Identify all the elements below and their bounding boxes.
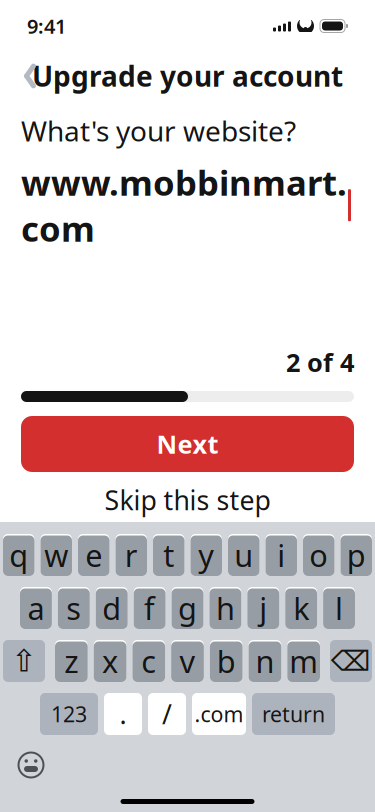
staticText: Next: [156, 427, 218, 461]
staticText: h: [216, 588, 235, 628]
button[interactable]: d: [96, 587, 128, 629]
staticText: m: [289, 641, 318, 681]
staticText: Upgrade your account: [32, 57, 343, 95]
staticText: x: [102, 641, 118, 681]
button[interactable]: Emoji keyboard: [9, 743, 53, 787]
staticText: u: [234, 535, 253, 575]
staticText: b: [217, 641, 236, 681]
staticText: www.mobbinmart.com: [21, 159, 347, 251]
button[interactable]: e: [78, 534, 109, 576]
staticText: l: [335, 588, 343, 628]
button[interactable]: .com: [192, 693, 246, 735]
button[interactable]: g: [172, 587, 203, 629]
button[interactable]: m: [287, 640, 320, 682]
button[interactable]: t: [153, 534, 184, 576]
button[interactable]: w: [40, 534, 72, 576]
button[interactable]: a: [20, 587, 52, 629]
button[interactable]: x: [94, 640, 126, 682]
staticText: y: [198, 535, 214, 575]
staticText: i: [277, 535, 285, 575]
staticText: .com: [194, 700, 243, 728]
staticText: c: [141, 641, 156, 681]
button[interactable]: l: [323, 587, 355, 629]
button[interactable]: Back: [8, 54, 52, 98]
staticText: j: [259, 588, 267, 628]
button[interactable]: .: [104, 693, 142, 735]
staticText: s: [66, 588, 81, 628]
staticText: ⇧: [11, 644, 37, 678]
button[interactable]: v: [171, 640, 204, 682]
staticText: p: [347, 535, 366, 575]
button[interactable]: return: [252, 693, 335, 735]
button[interactable]: j: [247, 587, 279, 629]
staticText: z: [64, 641, 78, 681]
button[interactable]: z: [55, 640, 88, 682]
staticText: Skip this step: [104, 482, 270, 518]
button[interactable]: /: [148, 693, 186, 735]
button[interactable]: Skip this step: [21, 478, 354, 522]
staticText: ⌫: [331, 645, 371, 677]
button[interactable]: k: [285, 587, 317, 629]
button[interactable]: Shift: [3, 640, 45, 682]
staticText: a: [27, 588, 44, 628]
staticText: w: [44, 535, 68, 575]
staticText: 9:41: [27, 13, 66, 39]
staticText: d: [102, 588, 121, 628]
button[interactable]: i: [265, 534, 297, 576]
button[interactable]: b: [210, 640, 243, 682]
button[interactable]: f: [134, 587, 166, 629]
button[interactable]: Next: [21, 416, 354, 472]
staticText: o: [309, 535, 328, 575]
staticText: n: [255, 641, 274, 681]
button[interactable]: c: [132, 640, 165, 682]
staticText: /: [162, 696, 172, 732]
staticText: g: [178, 588, 197, 628]
button[interactable]: Delete: [330, 640, 372, 682]
button[interactable]: p: [340, 534, 372, 576]
staticText: What's your website?: [21, 112, 296, 149]
staticText: t: [163, 535, 174, 575]
button[interactable]: q: [3, 534, 34, 576]
staticText: 123: [51, 700, 87, 728]
button[interactable]: h: [209, 587, 241, 629]
staticText: e: [85, 535, 102, 575]
button[interactable]: u: [228, 534, 259, 576]
button[interactable]: 123: [40, 693, 98, 735]
button[interactable]: n: [249, 640, 281, 682]
staticText: r: [125, 535, 138, 575]
button[interactable]: s: [58, 587, 90, 629]
staticText: return: [262, 700, 325, 728]
button[interactable]: y: [190, 534, 222, 576]
button[interactable]: o: [303, 534, 334, 576]
staticText: v: [179, 641, 195, 681]
staticText: 2 of 4: [286, 345, 354, 379]
staticText: q: [9, 535, 28, 575]
button[interactable]: r: [115, 534, 147, 576]
staticText: .: [119, 696, 126, 732]
staticText: k: [293, 588, 309, 628]
staticText: f: [144, 588, 155, 628]
